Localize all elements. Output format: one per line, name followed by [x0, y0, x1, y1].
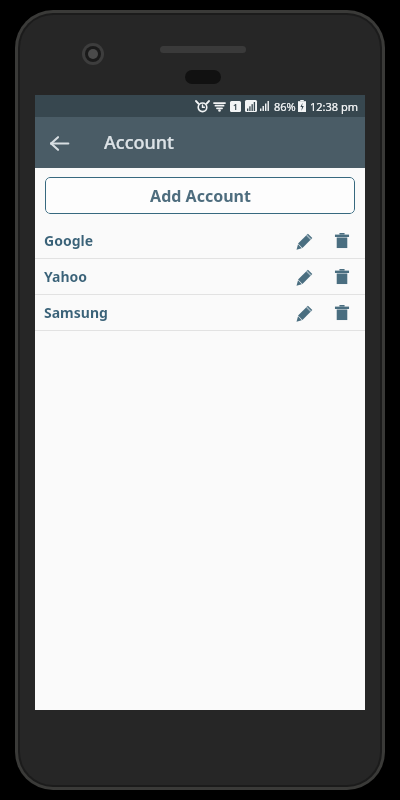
button[interactable]: Delete Google [325, 224, 359, 258]
staticText: 12:38 pm [310, 99, 359, 114]
staticText: Add Account [150, 185, 251, 207]
button[interactable]: Samsung [35, 295, 365, 330]
staticText: 86% [274, 99, 296, 114]
button[interactable]: Delete Yahoo [325, 260, 359, 294]
staticText: Yahoo [44, 267, 88, 286]
button[interactable]: Delete Samsung [325, 296, 359, 330]
button[interactable]: Yahoo [35, 259, 365, 294]
button[interactable]: Google [35, 223, 365, 258]
staticText: Google [44, 231, 94, 250]
button[interactable]: Edit Samsung [287, 296, 321, 330]
staticText: Samsung [44, 303, 108, 322]
staticText: Account [104, 130, 174, 155]
button[interactable]: Back [35, 119, 83, 167]
button[interactable]: Add Account [45, 177, 355, 214]
button[interactable]: Edit Yahoo [287, 260, 321, 294]
button[interactable]: Edit Google [287, 224, 321, 258]
staticText: 1 [233, 101, 238, 112]
